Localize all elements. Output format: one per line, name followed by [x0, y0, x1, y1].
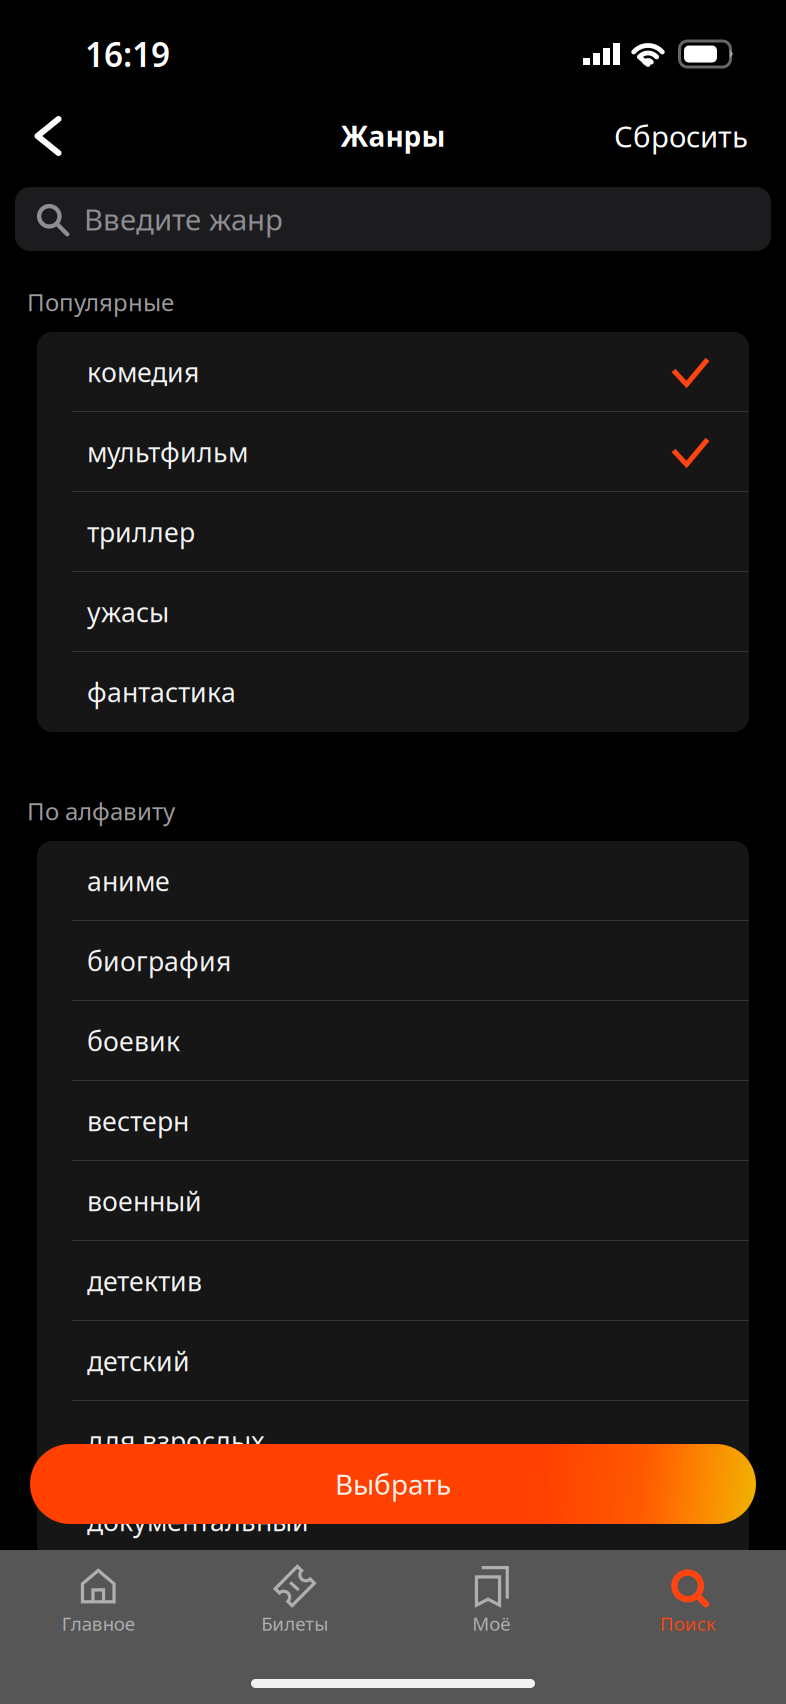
staticText: вестерн: [87, 1103, 189, 1139]
button[interactable]: триллер: [37, 492, 749, 572]
button[interactable]: мультфильм: [37, 412, 749, 492]
button[interactable]: ужасы: [37, 572, 749, 652]
staticText: ужасы: [87, 594, 169, 630]
button[interactable]: Главное: [0, 1550, 196, 1644]
staticText: Моё: [472, 1611, 510, 1636]
staticText: Введите жанр: [84, 199, 283, 238]
button[interactable]: аниме: [37, 841, 749, 921]
button[interactable]: Моё: [393, 1550, 589, 1644]
button[interactable]: для взрослых: [37, 1401, 749, 1481]
staticText: детский: [87, 1343, 190, 1379]
staticText: военный: [87, 1183, 202, 1219]
button[interactable]: Выбрать: [30, 1444, 756, 1524]
button[interactable]: Билеты: [196, 1550, 393, 1644]
button[interactable]: детский: [37, 1321, 749, 1401]
staticText: Выбрать: [335, 1465, 451, 1503]
staticText: детектив: [87, 1263, 202, 1299]
staticText: триллер: [87, 514, 195, 550]
button[interactable]: Back: [12, 104, 84, 168]
button[interactable]: вестерн: [37, 1081, 749, 1161]
staticText: Главное: [62, 1611, 135, 1636]
staticText: мультфильм: [87, 434, 248, 470]
staticText: фантастика: [87, 674, 236, 710]
button[interactable]: детектив: [37, 1241, 749, 1321]
staticText: Сбросить: [614, 116, 748, 155]
staticText: По алфавиту: [27, 795, 175, 827]
staticText: аниме: [87, 863, 170, 899]
staticText: для взрослых: [87, 1423, 265, 1459]
button[interactable]: комедия: [37, 332, 749, 412]
button[interactable]: фантастика: [37, 652, 749, 732]
staticText: Поиск: [660, 1611, 716, 1636]
button[interactable]: биография: [37, 921, 749, 1001]
staticText: биография: [87, 943, 231, 979]
button[interactable]: военный: [37, 1161, 749, 1241]
staticText: комедия: [87, 354, 199, 390]
staticText: Популярные: [27, 286, 174, 318]
button[interactable]: Сбросить: [604, 104, 758, 168]
staticText: 16:19: [85, 32, 170, 76]
button[interactable]: документальный: [37, 1481, 749, 1561]
staticText: Жанры: [340, 117, 445, 155]
staticText: боевик: [87, 1023, 180, 1059]
staticText: документальный: [87, 1503, 309, 1539]
button[interactable]: Поиск: [589, 1550, 786, 1644]
staticText: Билеты: [261, 1611, 328, 1636]
button[interactable]: Введите жанр: [15, 187, 771, 251]
button[interactable]: боевик: [37, 1001, 749, 1081]
